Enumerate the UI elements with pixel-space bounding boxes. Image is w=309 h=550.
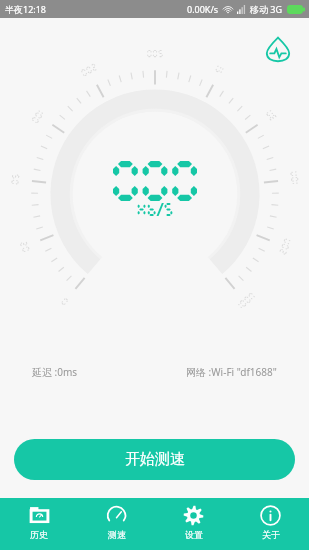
button[interactable]: 测速 (78, 498, 155, 550)
staticText: 0.00K/s (187, 3, 219, 15)
staticText: 关于 (262, 529, 280, 540)
staticText: 开始测速 (125, 450, 185, 469)
staticText: 延迟 :0ms (32, 365, 78, 379)
button[interactable]: 关于 (232, 498, 309, 550)
staticText: 设置 (185, 529, 203, 540)
staticText: 历史 (30, 529, 48, 540)
staticText: 半夜12:18 (5, 3, 47, 15)
button[interactable]: Ping test (261, 32, 295, 66)
staticText: 移动 3G (250, 3, 283, 15)
button[interactable]: 历史 (0, 498, 78, 550)
button[interactable]: 设置 (155, 498, 232, 550)
staticText: 测速 (108, 529, 126, 540)
button[interactable]: 开始测速 (14, 439, 295, 480)
staticText: 网络 :Wi-Fi "df1688" (186, 365, 277, 379)
